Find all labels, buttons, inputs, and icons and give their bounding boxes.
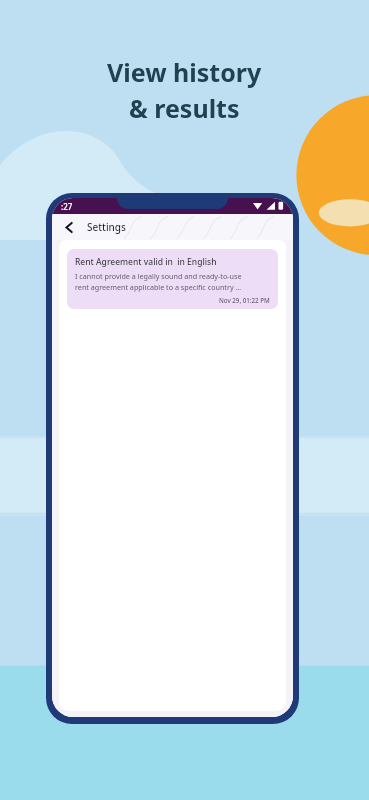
staticText: Rent Agreement valid in in English: [75, 256, 217, 268]
staticText: Nov 29, 01:22 PM: [219, 296, 270, 304]
staticText: Settings: [87, 220, 126, 234]
staticText: rent agreement applicable to a specific …: [75, 282, 242, 292]
button[interactable]: Rent Agreement valid in in English: [67, 249, 278, 309]
staticText: & results: [129, 91, 240, 125]
button[interactable]: Back: [59, 217, 79, 237]
staticText: :27: [61, 201, 73, 212]
staticText: View history: [107, 55, 262, 89]
staticText: I cannot provide a legally sound and rea…: [75, 271, 242, 281]
